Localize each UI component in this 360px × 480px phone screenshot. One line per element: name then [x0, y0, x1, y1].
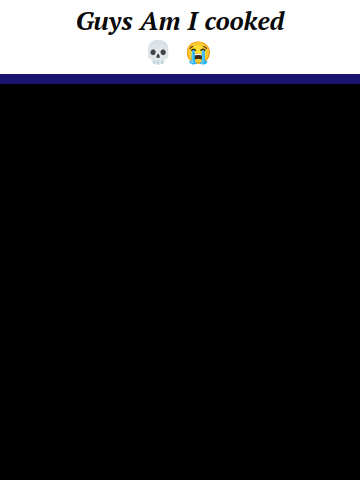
staticText: Guys Am I cooked	[75, 3, 284, 37]
staticText: 💀	[144, 39, 172, 66]
button[interactable]: Guys Am I cooked	[0, 0, 360, 74]
staticText: 😭	[185, 40, 212, 65]
